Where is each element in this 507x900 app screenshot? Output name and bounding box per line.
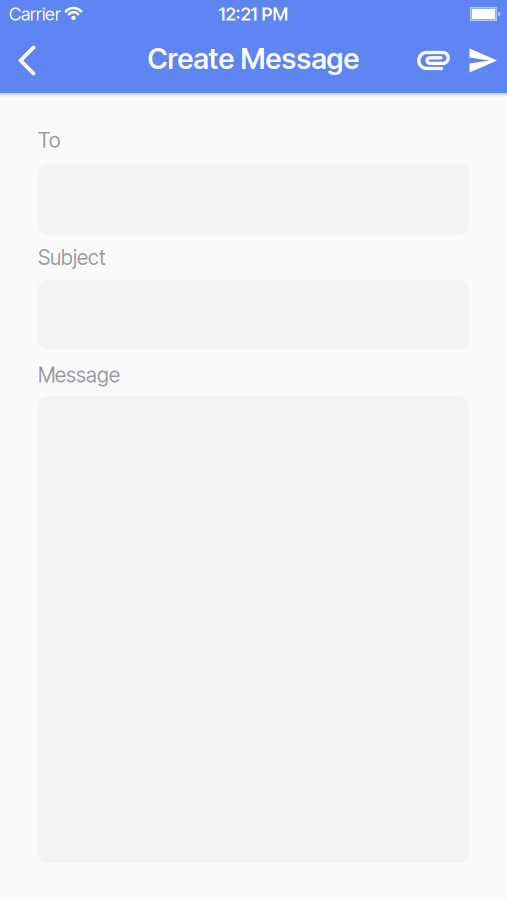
staticText: Subject: [38, 245, 106, 270]
button[interactable]: Send: [457, 48, 507, 73]
staticText: Carrier: [9, 3, 61, 25]
staticText: Create Message: [147, 42, 359, 75]
button[interactable]: Back: [0, 46, 49, 75]
button[interactable]: Attach file: [409, 49, 457, 71]
staticText: 12:21 PM: [218, 3, 288, 25]
staticText: To: [38, 128, 60, 152]
staticText: Message: [38, 363, 120, 387]
